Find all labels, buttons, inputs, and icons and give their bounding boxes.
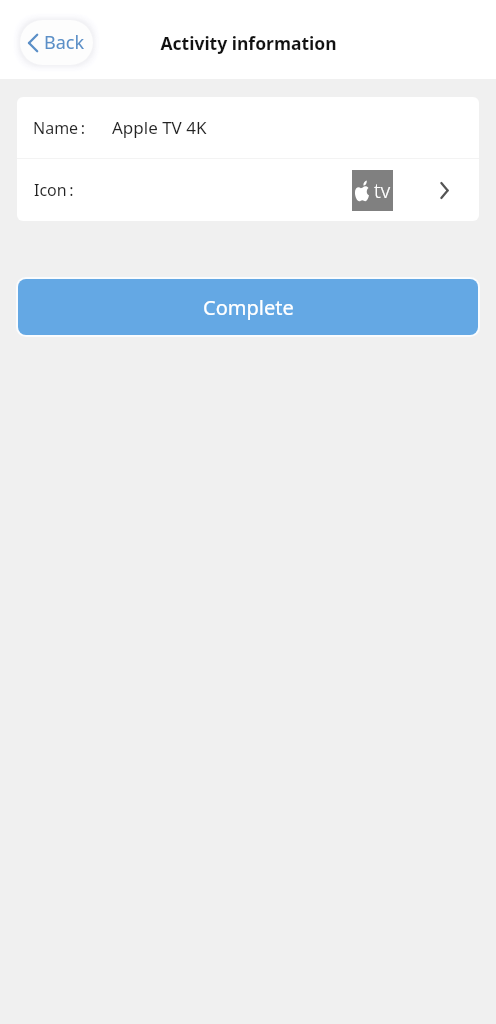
- button[interactable]: Complete: [18, 279, 478, 335]
- staticText: Name :: [33, 117, 86, 139]
- staticText: Activity information: [160, 31, 337, 55]
- staticText: Apple TV 4K: [112, 116, 207, 139]
- button[interactable]: Name :: [17, 97, 479, 158]
- button[interactable]: Back: [20, 20, 93, 65]
- staticText: Back: [44, 30, 85, 55]
- button[interactable]: Icon :: [17, 159, 479, 221]
- staticText: tv: [374, 177, 391, 204]
- staticText: Complete: [203, 294, 294, 321]
- staticText: Icon :: [34, 179, 74, 201]
